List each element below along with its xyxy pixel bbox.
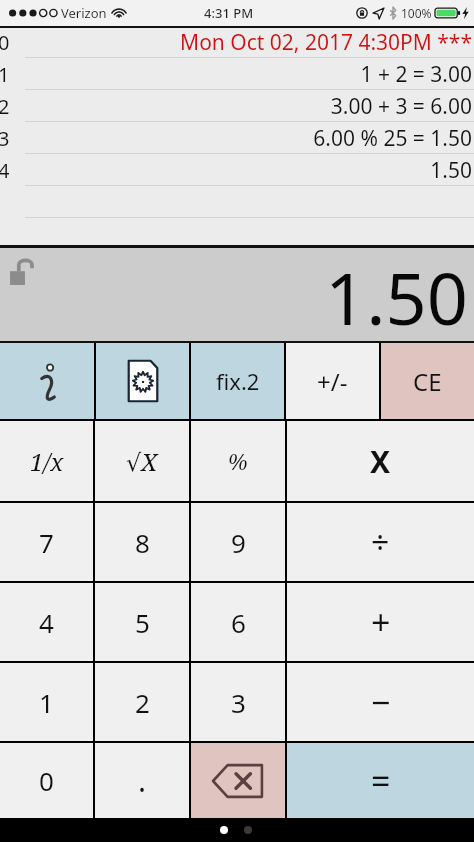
staticText: 1/x [30,445,64,478]
other: Unlock [10,259,32,285]
button[interactable]: Settings [96,343,189,419]
button[interactable]: ÷ [287,503,474,581]
button[interactable]: 8 [95,503,189,581]
staticText: ÷ [371,520,390,564]
button[interactable]: 9 [191,503,285,581]
staticText: 2 [0,93,10,120]
button[interactable]: 1/x [0,421,93,501]
staticText: + [371,599,391,645]
button[interactable]: 2 [95,663,189,741]
staticText: fix.2 [216,366,260,396]
button[interactable]: +/- [286,343,379,419]
staticText: X [370,441,391,482]
staticText: 1.50 [325,248,468,343]
staticText: 100% [401,5,432,21]
staticText: 4 [39,605,54,640]
staticText: . [138,760,147,801]
staticText: % [228,446,248,476]
button[interactable]: 1 [0,663,93,741]
staticText: = [371,758,391,804]
staticText: 0 [39,763,54,798]
staticText: 4:31 PM [204,4,254,22]
staticText: 6 [231,605,246,640]
button[interactable]: 0 [0,743,93,818]
staticText: Mon Oct 02, 2017 4:30PM *** [180,28,472,57]
button[interactable]: 4 [0,583,93,661]
staticText: 2 [135,685,150,720]
button[interactable]: Backspace [191,743,285,818]
staticText: 1.50 [430,156,472,185]
button[interactable]: 5 [95,583,189,661]
staticText: 6.00 % 25 = 1.50 [313,124,472,153]
staticText: 1 [0,61,10,88]
button[interactable]: − [287,663,474,741]
button[interactable]: Unlock [0,248,474,343]
button[interactable]: CE [381,343,474,419]
staticText: CE [413,365,442,398]
staticText: Verizon [61,4,107,22]
button[interactable]: . [95,743,189,818]
staticText: 3 [0,125,10,152]
button[interactable]: 6 [191,583,285,661]
button[interactable]: = [287,743,474,818]
staticText: 9 [231,525,246,560]
staticText: 1 [39,685,54,720]
staticText: 8 [135,525,150,560]
staticText: √X [126,445,158,478]
button[interactable]: + [287,583,474,661]
button[interactable]: √X [95,421,189,501]
button[interactable]: Info [0,343,94,419]
button[interactable]: % [191,421,285,501]
button[interactable]: X [287,421,474,501]
staticText: 7 [39,525,54,560]
staticText: 3 [231,685,246,720]
button[interactable]: 3 [191,663,285,741]
button[interactable]: 7 [0,503,93,581]
button[interactable]: fix.2 [191,343,284,419]
staticText: 3.00 + 3 = 6.00 [330,92,472,121]
staticText: 0 [0,29,10,56]
staticText: − [371,679,391,725]
staticText: 5 [135,605,150,640]
staticText: +/- [317,365,348,398]
staticText: 1 + 2 = 3.00 [360,60,472,89]
staticText: 4 [0,157,10,184]
